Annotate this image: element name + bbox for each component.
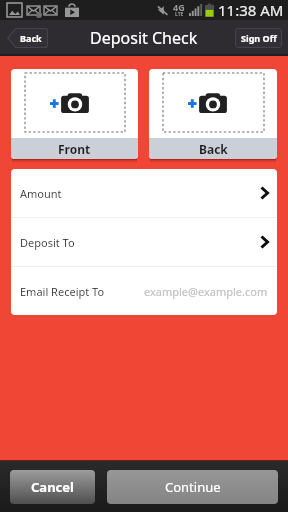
button[interactable]: Cancel: [10, 470, 95, 504]
staticText: Back: [20, 32, 42, 44]
button[interactable]: Continue: [107, 470, 278, 504]
button[interactable]: Email Receipt To: [11, 267, 277, 315]
staticText: Amount: [20, 186, 62, 201]
staticText: Email Receipt To: [20, 284, 105, 299]
button[interactable]: Sign Off: [235, 28, 282, 48]
staticText: Sign Off: [241, 32, 277, 44]
staticText: Deposit Check: [90, 27, 198, 49]
staticText: 11:38 AM: [218, 0, 284, 20]
button[interactable]: Back: [7, 28, 48, 48]
staticText: Cancel: [31, 478, 74, 496]
staticText: example@example.com: [144, 284, 268, 299]
staticText: LTE: [175, 11, 184, 18]
button[interactable]: Capture Back of check: [149, 69, 277, 159]
button[interactable]: Deposit To: [11, 218, 277, 266]
staticText: Front: [58, 141, 91, 157]
button[interactable]: Capture Front of check: [11, 69, 138, 159]
staticText: Back: [199, 141, 228, 157]
staticText: Continue: [165, 478, 221, 496]
staticText: 4G: [173, 1, 185, 13]
button[interactable]: Amount: [11, 169, 277, 217]
staticText: Deposit To: [20, 235, 75, 250]
